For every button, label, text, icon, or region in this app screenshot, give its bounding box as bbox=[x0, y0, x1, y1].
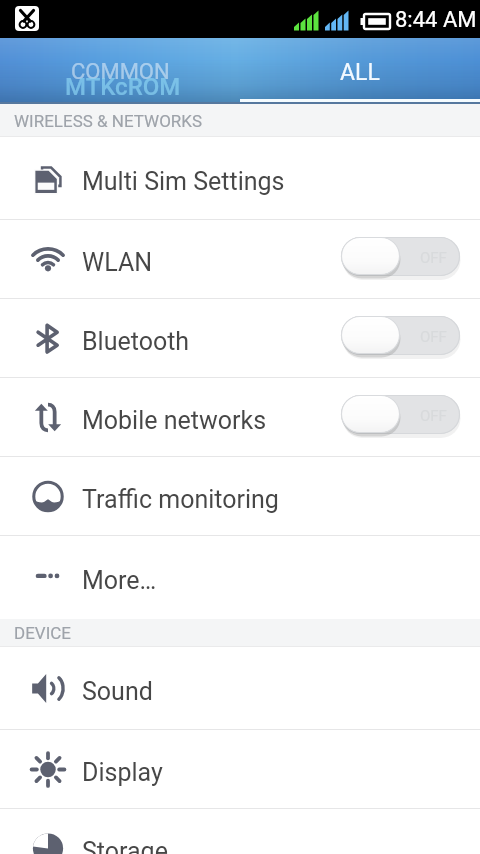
button[interactable]: Display bbox=[0, 730, 480, 809]
button[interactable]: Toggle off bbox=[341, 316, 460, 360]
staticText: Sound bbox=[82, 677, 153, 706]
staticText: OFF bbox=[420, 249, 447, 267]
staticText: Multi Sim Settings bbox=[82, 167, 285, 196]
button[interactable]: WLAN bbox=[0, 220, 480, 299]
button[interactable]: Bluetooth bbox=[0, 299, 480, 378]
button[interactable]: ALL bbox=[240, 38, 480, 104]
button[interactable]: Storage bbox=[0, 809, 480, 854]
button[interactable]: Sound bbox=[0, 647, 480, 730]
button[interactable]: Mobile networks bbox=[0, 378, 480, 457]
staticText: OFF bbox=[420, 407, 447, 425]
staticText: Storage bbox=[82, 837, 168, 854]
button[interactable]: Toggle off bbox=[341, 237, 460, 281]
staticText: COMMON bbox=[71, 59, 170, 85]
button[interactable]: COMMON bbox=[0, 38, 240, 104]
staticText: Traffic monitoring bbox=[82, 485, 279, 514]
staticText: ALL bbox=[340, 59, 380, 86]
staticText: MTKcROM bbox=[65, 73, 181, 101]
staticText: 8:44 AM bbox=[395, 7, 477, 33]
button[interactable]: More… bbox=[0, 536, 480, 619]
staticText: WIRELESS & NETWORKS bbox=[14, 111, 203, 131]
button[interactable]: Multi Sim Settings bbox=[0, 137, 480, 220]
button[interactable]: Toggle off bbox=[341, 395, 460, 439]
staticText: Mobile networks bbox=[82, 406, 267, 435]
staticText: OFF bbox=[420, 328, 447, 346]
button[interactable]: Traffic monitoring bbox=[0, 457, 480, 536]
staticText: DEVICE bbox=[14, 623, 71, 643]
staticText: WLAN bbox=[82, 248, 153, 277]
staticText: Display bbox=[82, 758, 163, 787]
staticText: Bluetooth bbox=[82, 327, 190, 356]
staticText: More… bbox=[82, 566, 157, 595]
